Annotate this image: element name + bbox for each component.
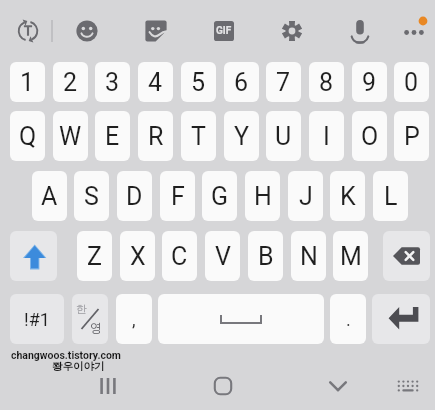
button[interactable]: G [202,171,237,221]
button[interactable]: Q [10,111,45,161]
staticText: F [171,182,185,211]
button[interactable]: C [162,231,197,281]
button[interactable]: L [373,171,408,221]
staticText: I [323,122,330,151]
button[interactable]: . [330,294,366,344]
button[interactable]: Hide keyboard [315,370,361,402]
staticText: 5 [191,68,206,97]
staticText: 영 [90,320,102,335]
staticText: 1 [20,68,35,97]
staticText: 8 [319,68,334,97]
button[interactable]: O [352,111,387,161]
button[interactable]: 5 [181,62,216,102]
button[interactable]: , [116,294,152,344]
button[interactable]: A [32,171,67,221]
staticText: B [258,242,274,271]
staticText: X [130,242,146,271]
button[interactable]: T [181,111,216,161]
staticText: 한 [76,302,87,316]
staticText: N [300,242,318,271]
button[interactable]: R [138,111,173,161]
button[interactable]: GIF [205,12,243,50]
staticText: 3 [105,68,120,97]
button[interactable]: Z [77,231,112,281]
staticText: . [346,309,351,330]
staticText: T [191,122,206,151]
staticText: changwoos.tistory.com [11,349,121,361]
staticText: K [340,182,356,211]
button[interactable]: 1 [10,62,45,102]
button[interactable]: V [205,231,240,281]
button[interactable]: 0 [394,62,429,102]
staticText: R [148,122,164,151]
staticText: E [105,122,120,151]
staticText: GIF [216,25,232,37]
staticText: 6 [234,68,249,97]
button[interactable]: !#1 [10,294,64,344]
staticText: G [211,182,229,211]
button[interactable]: Shift [10,231,57,281]
button[interactable]: 6 [224,62,259,102]
button[interactable]: Backspace [383,231,430,281]
staticText: C [171,242,188,271]
staticText: 쫭우이야기 [52,360,105,373]
staticText: 2 [63,68,78,97]
button[interactable]: Recents [85,370,131,402]
button[interactable]: 7 [266,62,301,102]
staticText: V [215,242,231,271]
staticText: J [299,182,313,211]
staticText: 9 [362,68,377,97]
staticText: W [59,122,82,151]
button[interactable]: H [245,171,280,221]
staticText: 7 [276,68,291,97]
button[interactable]: More options [395,12,433,50]
button[interactable]: Voice input [341,12,379,50]
staticText: , [132,309,136,330]
button[interactable]: Settings [273,12,311,50]
staticText: M [340,242,362,271]
button[interactable]: 9 [352,62,387,102]
staticText: S [84,182,99,211]
button[interactable]: 3 [95,62,130,102]
button[interactable]: N [291,231,326,281]
button[interactable]: B [248,231,283,281]
button[interactable]: J [288,171,323,221]
button[interactable]: Space [158,294,324,344]
staticText: U [275,122,292,151]
button[interactable]: I [309,111,344,161]
staticText: Q [19,122,37,151]
staticText: D [126,182,143,211]
button[interactable]: K [330,171,365,221]
button[interactable]: W [53,111,88,161]
button[interactable]: Enter [372,294,430,344]
button[interactable]: M [333,231,368,281]
button[interactable]: Korean English [72,294,108,344]
staticText: P [404,122,420,151]
button[interactable]: 4 [138,62,173,102]
staticText: !#1 [24,309,50,330]
staticText: L [384,182,398,211]
staticText: 0 [404,68,419,97]
button[interactable]: Home [200,370,246,402]
button[interactable]: Translate [9,12,47,50]
button[interactable]: U [266,111,301,161]
button[interactable]: X [120,231,155,281]
button[interactable]: F [160,171,195,221]
button[interactable]: 2 [53,62,88,102]
staticText: H [254,182,272,211]
button[interactable]: Emoji [68,12,106,50]
staticText: Z [87,242,102,271]
button[interactable]: 8 [309,62,344,102]
staticText: A [41,182,58,211]
button[interactable]: D [117,171,152,221]
button[interactable]: Switch keyboard [385,370,431,402]
button[interactable]: Stickers [137,12,175,50]
button[interactable]: P [394,111,429,161]
staticText: O [361,122,379,151]
button[interactable]: S [74,171,109,221]
staticText: 4 [148,68,163,97]
staticText: Y [234,122,250,151]
button[interactable]: Y [224,111,259,161]
button[interactable]: E [95,111,130,161]
